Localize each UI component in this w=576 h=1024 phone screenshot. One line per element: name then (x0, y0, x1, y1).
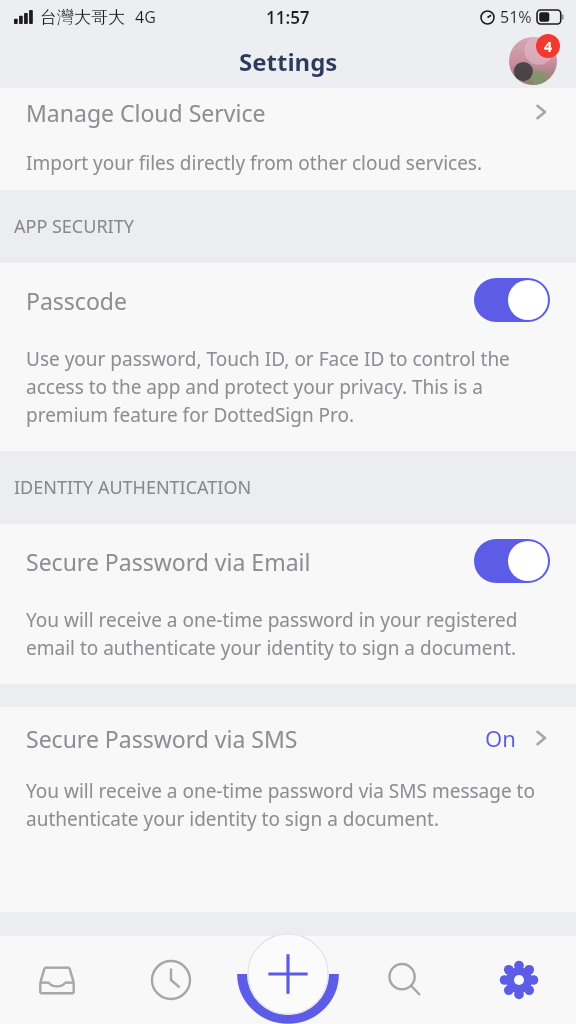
staticText: 台灣大哥大 (40, 7, 125, 28)
staticText: Import your files directly from other cl… (26, 150, 483, 176)
button[interactable]: Passcode toggle, on (474, 278, 550, 322)
staticText: IDENTITY AUTHENTICATION (14, 475, 252, 500)
button[interactable]: Settings (462, 936, 576, 1024)
staticText: APP SECURITY (14, 214, 134, 239)
button[interactable]: History (114, 936, 228, 1024)
staticText: access to the app and protect your priva… (26, 374, 483, 400)
staticText: Settings (239, 45, 338, 78)
staticText: 4G (135, 6, 156, 28)
button[interactable]: Secure Password via SMS (0, 707, 576, 769)
staticText: authenticate your identity to sign a doc… (26, 806, 440, 832)
button[interactable]: Create new (231, 918, 345, 1024)
staticText: You will receive a one-time password in … (26, 607, 518, 633)
staticText: Secure Password via SMS (26, 723, 298, 754)
staticText: 51% (500, 6, 532, 28)
staticText: On (485, 723, 516, 753)
button[interactable]: Passcode (0, 263, 576, 337)
staticText: Manage Cloud Service (26, 97, 266, 128)
button[interactable]: Profile (506, 34, 560, 88)
staticText: You will receive a one-time password via… (26, 778, 535, 804)
staticText: premium feature for DottedSign Pro. (26, 402, 355, 428)
staticText: 11:57 (266, 6, 310, 29)
staticText: Secure Password via Email (26, 546, 311, 577)
button[interactable]: Inbox (0, 936, 114, 1024)
button[interactable]: Secure Password via Email (0, 524, 576, 598)
staticText: email to authenticate your identity to s… (26, 635, 517, 661)
button[interactable]: Manage Cloud Service (0, 88, 576, 136)
staticText: 4 (544, 37, 553, 56)
button[interactable]: Search (348, 936, 462, 1024)
staticText: Passcode (26, 285, 127, 316)
staticText: Use your password, Touch ID, or Face ID … (26, 346, 510, 372)
button[interactable]: Secure Password via Email toggle, on (474, 539, 550, 583)
